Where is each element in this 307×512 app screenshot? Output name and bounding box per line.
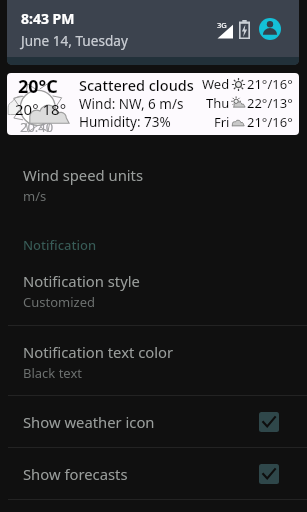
staticText: 8:43 PM (21, 9, 75, 28)
button[interactable]: Wind speed units (0, 149, 307, 220)
staticText: Notification (23, 236, 97, 254)
staticText: 20°C (18, 74, 58, 99)
staticText: Wind: NW, 6 m/s (79, 95, 184, 113)
staticText: 21°/16° (247, 113, 293, 131)
staticText: Customized (23, 293, 95, 311)
button[interactable]: Show weather icon (0, 396, 307, 447)
staticText: Wind speed units (23, 165, 144, 185)
staticText: Thu (206, 94, 230, 112)
button[interactable]: Account (259, 18, 281, 40)
staticText: 3G (217, 20, 227, 30)
staticText: Humidity: 73% (79, 113, 171, 131)
staticText: June 14, Tuesday (21, 31, 128, 50)
staticText: Wed (202, 75, 230, 93)
staticText: Black text (23, 364, 82, 382)
staticText: Scattered clouds (79, 75, 194, 95)
staticText: 22°/13° (247, 94, 293, 112)
staticText: Notification text color (23, 342, 174, 362)
staticText: Fri (214, 113, 230, 131)
staticText: 20° 18° (15, 99, 67, 119)
button[interactable]: 8:43 PM (7, 0, 299, 65)
staticText: 20:40 (20, 118, 54, 135)
staticText: Show forecasts (23, 464, 259, 484)
staticText: 21°/16° (247, 75, 293, 93)
button[interactable]: Notification style (0, 255, 307, 325)
staticText: Notification style (23, 271, 140, 291)
staticText: Show weather icon (23, 412, 259, 432)
button[interactable]: Show forecasts (0, 448, 307, 499)
staticText: m/s (23, 187, 47, 205)
button[interactable]: Notification text color (0, 326, 307, 395)
button[interactable]: 20°C (7, 73, 299, 135)
